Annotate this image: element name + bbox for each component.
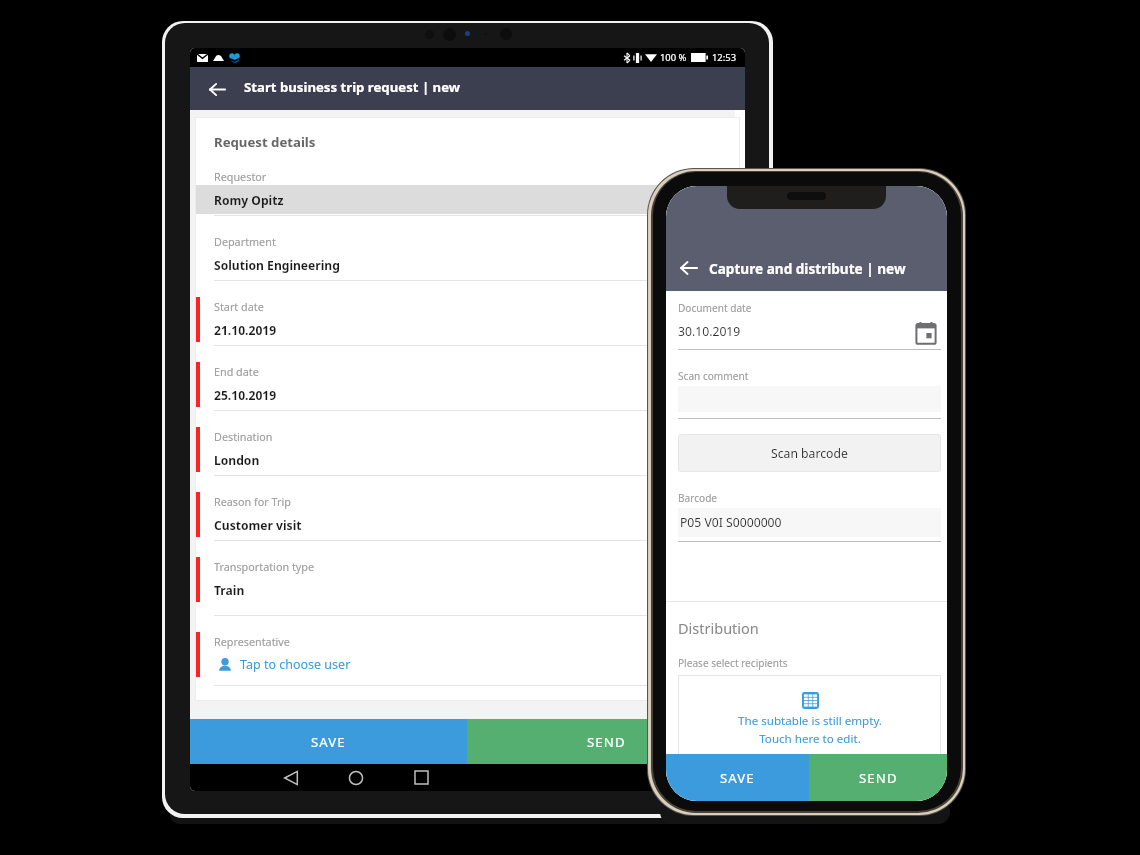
staticText: Document date (678, 301, 752, 315)
staticText: SEND (859, 769, 898, 787)
staticText: SAVE (720, 769, 755, 787)
button[interactable]: Recents (401, 764, 441, 791)
staticText: Train (214, 582, 245, 598)
button[interactable]: Scan barcode (678, 434, 941, 472)
button[interactable]: Requestor (195, 151, 740, 216)
button[interactable]: SEND (467, 719, 745, 764)
staticText: 100 % (660, 51, 687, 64)
staticText: Romy Opitz (214, 192, 284, 208)
staticText: P05 V0I S0000000 (680, 514, 782, 531)
button[interactable]: SAVE (190, 719, 467, 764)
button[interactable]: Back (200, 72, 234, 106)
button[interactable]: Start date (195, 281, 740, 346)
staticText: Customer visit (214, 517, 302, 533)
staticText: Reason for Trip (214, 494, 291, 509)
staticText: Start business trip request | new (244, 78, 461, 96)
staticText: Barcode (678, 491, 718, 505)
button[interactable]: Department (195, 216, 740, 281)
staticText: 12:53 (712, 51, 737, 64)
staticText: 25.10.2019 (214, 387, 277, 403)
button[interactable]: Back (674, 253, 704, 283)
staticText: Department (214, 234, 276, 249)
staticText: Tap to choose user (240, 656, 351, 673)
button[interactable]: P05 V0I S0000000 (678, 508, 941, 537)
staticText: Request details (214, 133, 316, 151)
staticText: 21.10.2019 (214, 322, 277, 338)
staticText: Start date (214, 299, 264, 314)
button[interactable]: Transportation type (195, 541, 740, 616)
staticText: The subtable is still empty. (738, 713, 882, 729)
staticText: End date (214, 364, 259, 379)
button[interactable]: Choose date (913, 320, 939, 346)
button[interactable]: SAVE (666, 754, 809, 801)
button[interactable]: Representative (195, 616, 740, 686)
button[interactable]: The subtable is still empty. (678, 675, 941, 760)
staticText: Touch here to edit. (759, 731, 861, 747)
staticText: Capture and distribute | new (709, 259, 906, 278)
staticText: Scan barcode (771, 445, 848, 462)
staticText: Scan comment (678, 369, 749, 383)
staticText: Representative (214, 634, 290, 649)
staticText: SEND (587, 733, 626, 751)
staticText: SAVE (311, 733, 346, 751)
button[interactable]: Back (271, 764, 311, 791)
staticText: Distribution (678, 618, 759, 638)
button[interactable]: End date (195, 346, 740, 411)
staticText: London (214, 452, 260, 468)
button[interactable]: Reason for Trip (195, 476, 740, 541)
staticText: Requestor (214, 169, 267, 184)
staticText: 30.10.2019 (678, 323, 741, 340)
staticText: Please select recipients (678, 656, 788, 670)
staticText: Destination (214, 429, 273, 444)
staticText: Transportation type (214, 559, 315, 574)
staticText: Solution Engineering (214, 257, 340, 273)
button[interactable]: Destination (195, 411, 740, 476)
button[interactable]: SEND (809, 754, 947, 801)
button[interactable]: Home (336, 764, 376, 791)
